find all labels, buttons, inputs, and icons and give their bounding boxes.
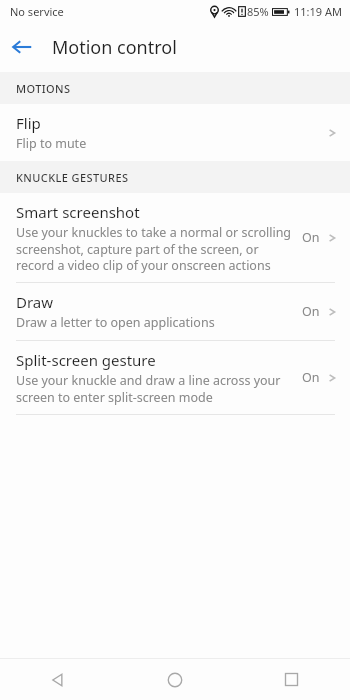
staticText: 11:19 AM (294, 4, 342, 19)
staticText: MOTIONS (16, 81, 71, 96)
staticText: No service (10, 4, 64, 19)
staticText: On (302, 229, 320, 246)
staticText: Motion control (52, 35, 177, 60)
staticText: Smart screenshot (16, 202, 140, 222)
staticText: Draw a letter to open applications (16, 314, 215, 331)
staticText: Split-screen gesture (16, 350, 156, 370)
staticText: 85% (247, 4, 269, 19)
staticText: KNUCKLE GESTURES (16, 170, 129, 185)
staticText: Use your knuckles to take a normal or sc… (16, 224, 292, 273)
staticText: Flip (16, 113, 41, 133)
staticText: Use your knuckle and draw a line across … (16, 372, 292, 405)
button[interactable]: Flip (0, 104, 350, 161)
button[interactable]: Recent apps (233, 659, 350, 700)
button[interactable]: Back (0, 25, 44, 69)
button[interactable]: Split-screen gesture (0, 341, 350, 414)
staticText: On (302, 369, 320, 386)
staticText: Draw (16, 292, 54, 312)
button[interactable]: Smart screenshot (0, 193, 350, 282)
button[interactable]: Back (0, 659, 116, 700)
button[interactable]: Home (116, 659, 233, 700)
staticText: On (302, 303, 320, 320)
staticText: Flip to mute (16, 135, 87, 152)
button[interactable]: Draw (0, 283, 350, 340)
